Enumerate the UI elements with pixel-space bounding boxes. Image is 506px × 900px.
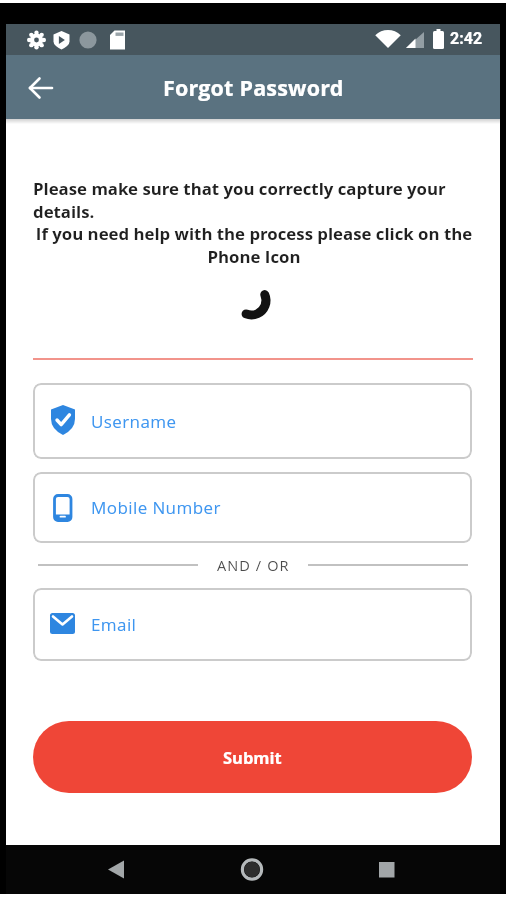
staticText: Submit — [223, 746, 282, 768]
staticText: AND / OR — [217, 556, 290, 575]
button[interactable] — [235, 285, 273, 323]
staticText: Mobile Number — [91, 496, 221, 519]
staticText: Email — [91, 613, 137, 636]
staticText: 2:42 — [450, 29, 483, 48]
button[interactable]: Email — [33, 588, 472, 661]
staticText: Forgot Password — [163, 73, 344, 102]
staticText: If you need help with the process please… — [33, 222, 475, 900]
button[interactable]: Username — [33, 383, 472, 459]
button[interactable]: Submit — [33, 721, 472, 793]
staticText: Username — [91, 410, 177, 433]
button[interactable] — [234, 852, 270, 887]
staticText: Please make sure that you correctly capt… — [33, 177, 446, 223]
button[interactable] — [24, 72, 58, 104]
button[interactable] — [368, 853, 404, 886]
button[interactable]: Mobile Number — [33, 472, 472, 543]
button[interactable] — [98, 853, 134, 886]
